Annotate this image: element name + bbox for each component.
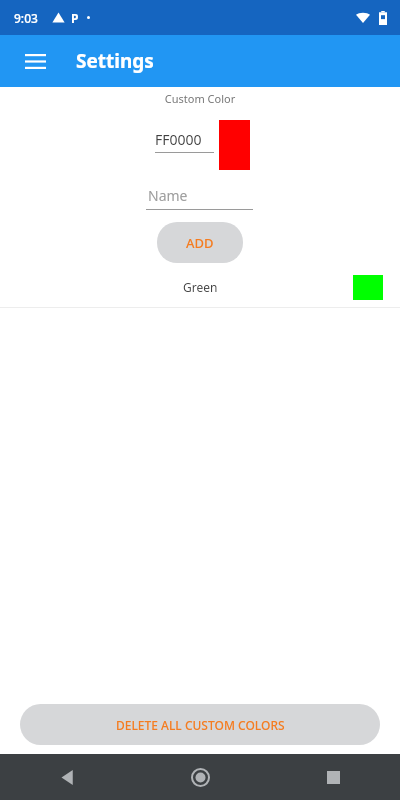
button[interactable]: ADD: [157, 222, 243, 263]
button[interactable]: Open navigation menu: [13, 39, 57, 83]
staticText: 9:03: [14, 10, 38, 26]
button[interactable]: DELETE ALL CUSTOM COLORS: [20, 704, 380, 745]
button[interactable]: Recent apps: [267, 754, 400, 800]
staticText: ADD: [186, 234, 214, 252]
staticText: Green: [183, 279, 218, 295]
staticText: Name: [148, 186, 188, 205]
button[interactable]: Home: [134, 754, 267, 800]
button[interactable]: Name: [146, 186, 253, 210]
staticText: P: [71, 10, 79, 26]
staticText: DELETE ALL CUSTOM COLORS: [116, 717, 285, 733]
staticText: Settings: [76, 48, 154, 74]
staticText: FF0000: [155, 130, 202, 149]
button[interactable]: Green: [0, 267, 400, 307]
button[interactable]: Back: [0, 754, 134, 800]
staticText: Custom Color: [0, 91, 400, 106]
button[interactable]: FF0000: [155, 130, 215, 153]
